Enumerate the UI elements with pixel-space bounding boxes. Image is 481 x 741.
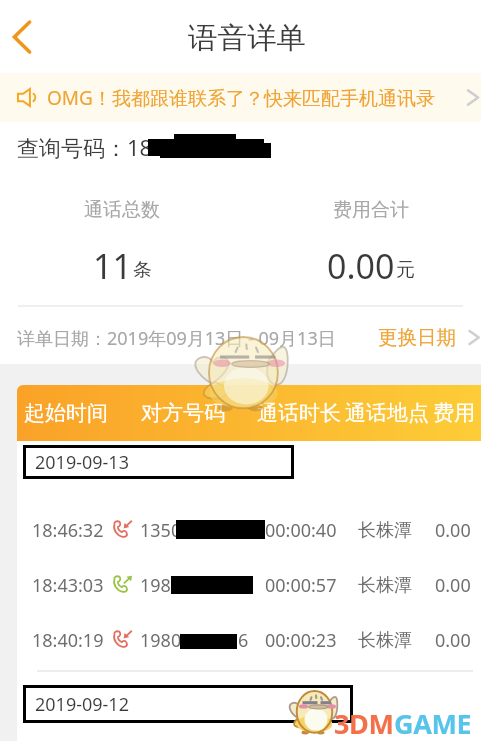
staticText: 18:43:03 (32, 573, 104, 598)
staticText: 条 (133, 258, 152, 282)
staticText: 元 (396, 258, 415, 282)
staticText: 对方号码 (141, 400, 225, 426)
staticText: 起始时间 (24, 400, 108, 426)
staticText: 详单日期：2019年09月13日 - 09月13日 (17, 326, 336, 351)
staticText: 通话地点 (345, 400, 429, 426)
staticText: 00:00:57 (265, 573, 337, 598)
staticText: 长株潭 (358, 574, 412, 597)
staticText: 0.00 (435, 518, 471, 543)
staticText: 通话总数 (84, 198, 160, 222)
staticText: 18:40:19 (32, 628, 104, 653)
staticText: 0.00 (327, 243, 395, 287)
button[interactable]: OMG！我都跟谁联系了？快来匹配手机通讯录 (0, 73, 481, 122)
staticText: 18:46:32 (32, 518, 104, 543)
staticText: 费用 (433, 400, 475, 426)
button[interactable]: 18:40:19 (17, 613, 481, 668)
button[interactable]: Back (0, 13, 46, 61)
staticText: 2019-09-13 (35, 450, 129, 475)
staticText: 11 (93, 243, 132, 287)
staticText: 00:00:23 (265, 628, 337, 653)
staticText: 费用合计 (333, 198, 409, 222)
staticText: 1980 (140, 573, 182, 598)
staticText: 通话时长 (257, 400, 341, 426)
staticText: 语音详单 (188, 20, 306, 57)
staticText: OMG！我都跟谁联系了？快来匹配手机通讯录 (47, 85, 435, 111)
staticText: 1350 (140, 518, 182, 543)
staticText: 0.00 (435, 628, 471, 653)
button[interactable]: 18:46:32 (17, 503, 481, 558)
staticText: 1980 (140, 628, 182, 653)
staticText: 3DM (334, 705, 394, 741)
staticText: 长株潭 (358, 519, 412, 542)
staticText: 6 (238, 628, 249, 653)
staticText: 更换日期 (378, 325, 456, 350)
button[interactable]: 18:43:03 (17, 558, 481, 613)
staticText: GAME (394, 705, 472, 741)
staticText: 长株潭 (358, 629, 412, 652)
button[interactable]: 更换日期 (378, 320, 481, 354)
staticText: 0.00 (435, 573, 471, 598)
staticText: 00:00:40 (265, 518, 337, 543)
staticText: 查询号码：18 (17, 132, 153, 162)
staticText: 2019-09-12 (35, 692, 129, 717)
